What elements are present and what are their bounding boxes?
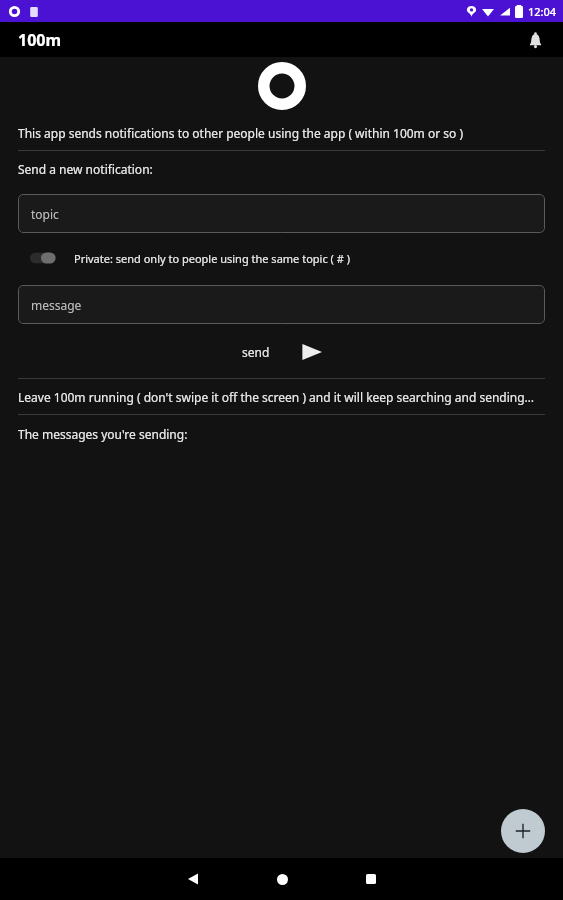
button[interactable]: Recent apps (346, 858, 396, 900)
staticText: 12:04 (528, 4, 557, 19)
staticText: send (242, 344, 270, 360)
staticText: Leave 100m running ( don't swipe it off … (18, 389, 535, 405)
button[interactable]: Notifications (520, 25, 550, 55)
button[interactable]: Home (257, 858, 307, 900)
staticText: Send a new notification: (18, 161, 153, 177)
button[interactable]: send (236, 340, 328, 364)
button[interactable]: Back (168, 858, 218, 900)
staticText: The messages you're sending: (18, 426, 188, 442)
button[interactable]: topic (18, 194, 545, 233)
staticText: This app sends notifications to other pe… (18, 125, 464, 141)
staticText: Private: send only to people using the s… (74, 251, 350, 266)
staticText: message (31, 297, 82, 313)
button[interactable]: message (18, 285, 545, 324)
button[interactable]: Add (501, 809, 545, 853)
staticText: topic (31, 206, 59, 222)
button[interactable]: Private toggle (0, 245, 563, 271)
staticText: 100m (18, 29, 62, 51)
button[interactable]: Private toggle (30, 251, 56, 265)
